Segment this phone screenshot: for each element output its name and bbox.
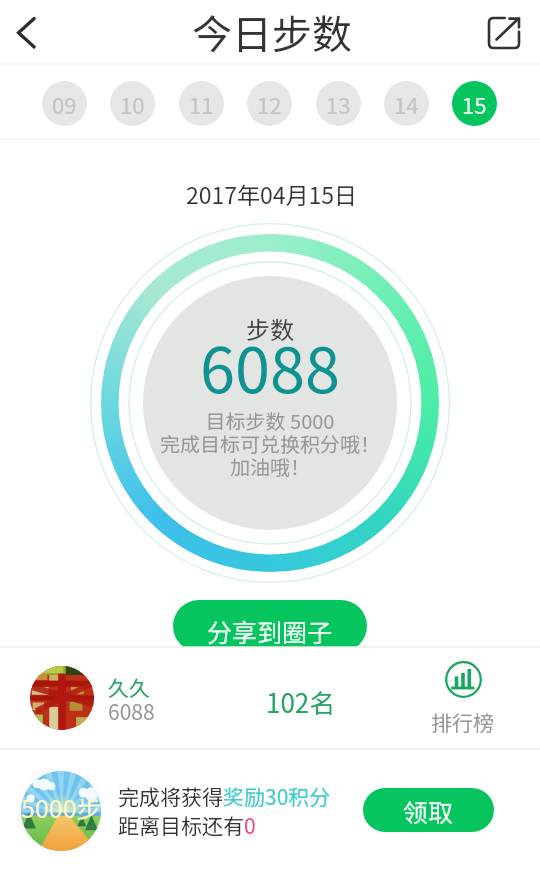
- staticText: 久久: [108, 672, 150, 702]
- button[interactable]: 13: [316, 81, 361, 126]
- staticText: 10: [120, 88, 145, 120]
- button[interactable]: 09: [42, 81, 87, 126]
- staticText: 分享到圈子: [207, 613, 333, 649]
- button[interactable]: 10: [110, 81, 155, 126]
- staticText: 09: [52, 88, 77, 120]
- staticText: 排行榜: [431, 707, 494, 737]
- staticText: 6088: [108, 696, 155, 726]
- staticText: 领取: [403, 793, 454, 829]
- button[interactable]: Back: [0, 0, 54, 65]
- staticText: 11: [189, 88, 214, 120]
- button[interactable]: 久久: [0, 647, 540, 750]
- staticText: 12: [257, 88, 282, 120]
- button[interactable]: 排行榜: [445, 661, 482, 698]
- staticText: 14: [394, 88, 419, 120]
- button[interactable]: 12: [247, 81, 292, 126]
- staticText: 6088: [200, 320, 340, 411]
- staticText: 今日步数: [192, 3, 352, 61]
- button[interactable]: 领取: [363, 788, 494, 832]
- staticText: 步数: [246, 311, 294, 346]
- button[interactable]: 15: [452, 81, 497, 126]
- staticText: 5000步: [21, 789, 101, 825]
- button[interactable]: 14: [384, 81, 429, 126]
- staticText: 2017年04月15日: [186, 177, 358, 210]
- button[interactable]: Share: [476, 0, 540, 65]
- staticText: 102名: [266, 683, 336, 721]
- staticText: 13: [326, 88, 351, 120]
- button[interactable]: 分享到圈子: [173, 600, 367, 652]
- staticText: 15: [462, 88, 487, 120]
- staticText: 完成将获得奖励30积分 距离目标还有0: [118, 781, 331, 840]
- button[interactable]: 11: [179, 81, 224, 126]
- staticText: 目标步数 5000 完成目标可兑换积分哦！ 加油哦！: [160, 406, 380, 481]
